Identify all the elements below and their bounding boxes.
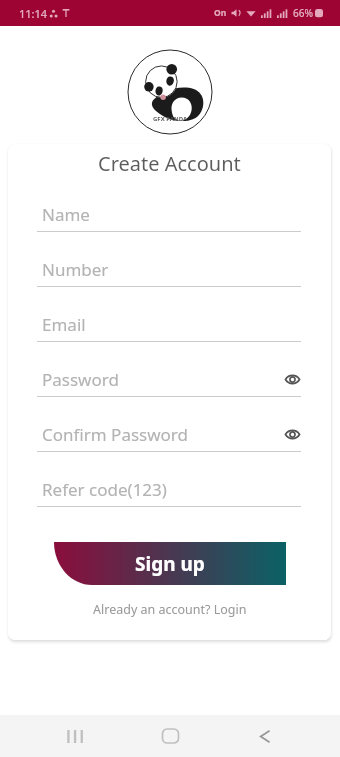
staticText: Confirm Password — [42, 423, 188, 446]
staticText: Name — [42, 203, 90, 226]
staticText: Password — [42, 368, 119, 391]
staticText: Refer code(123) — [42, 478, 167, 501]
button[interactable]: Already an account? Login — [93, 601, 247, 618]
staticText: 11:14 — [19, 6, 48, 21]
staticText: Email — [42, 313, 86, 336]
staticText: On — [214, 7, 227, 19]
button[interactable]: Number — [37, 252, 301, 307]
button[interactable]: Toggle password visibility — [283, 370, 301, 388]
button[interactable]: Name — [37, 197, 301, 252]
staticText: 66% — [293, 6, 313, 20]
button[interactable]: Back — [245, 716, 285, 756]
staticText: Create Account — [98, 150, 241, 177]
button[interactable]: Password — [37, 362, 301, 417]
button[interactable]: Confirm Password — [37, 417, 301, 472]
button[interactable]: Recents — [55, 716, 95, 756]
button[interactable]: Toggle password visibility — [283, 425, 301, 443]
button[interactable]: Home — [150, 716, 190, 756]
staticText: Sign up — [135, 551, 205, 577]
button[interactable]: Sign up — [54, 542, 286, 585]
staticText: Number — [42, 258, 109, 281]
button[interactable]: Refer code(123) — [37, 472, 301, 527]
button[interactable]: Email — [37, 307, 301, 362]
staticText: GFX PANDA — [153, 115, 188, 123]
